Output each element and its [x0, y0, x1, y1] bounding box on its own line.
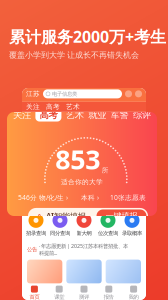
staticText: 同分查询 [50, 230, 70, 236]
staticText: 546分 物/化/生 › [18, 193, 68, 202]
staticText: 报告 [104, 294, 114, 300]
staticText: 适合你的大学 [61, 178, 103, 186]
button[interactable]: 就业 [88, 108, 106, 121]
staticText: 课堂 [54, 294, 64, 300]
staticText: 测评 [79, 294, 89, 300]
staticText: 关注 [26, 103, 40, 111]
button[interactable]: 录取概率 [120, 213, 144, 236]
staticText: AI智能填报 [46, 211, 86, 221]
button[interactable]: ∿ [28, 208, 148, 224]
button[interactable]: 军警 [111, 108, 129, 121]
staticText: 853 [55, 141, 100, 177]
button[interactable]: 新大纲 [72, 213, 96, 236]
button[interactable]: 高考 [35, 108, 61, 121]
staticText: 综评 [133, 109, 151, 120]
staticText: 本科 › [81, 193, 99, 202]
button[interactable]: 艺术 [66, 108, 84, 121]
button[interactable] [106, 260, 141, 284]
staticText: 一键填报 [105, 211, 137, 221]
button[interactable]: 课堂 [47, 286, 72, 300]
staticText: 位次查询 [98, 230, 118, 236]
staticText: 关注 [13, 109, 31, 120]
staticText: · 年志愿更新 | 2025江苏本科普招批、本科提前... [39, 242, 128, 257]
button[interactable]: 综评 [133, 108, 151, 121]
staticText: 高考 [46, 103, 60, 111]
button[interactable] [66, 260, 102, 284]
staticText: 艺术 [66, 109, 84, 120]
button[interactable]: 首页 [22, 286, 47, 300]
button[interactable]: 测评 [72, 286, 96, 300]
button[interactable]: 报告 [96, 286, 121, 300]
staticText: 公告 [27, 246, 37, 253]
staticText: 10张志愿表 [110, 193, 146, 202]
button[interactable]: 关注 [13, 108, 31, 121]
button[interactable]: 位次查询 [96, 213, 120, 236]
staticText: 军警 [111, 109, 129, 120]
staticText: 艺术 [66, 103, 80, 111]
staticText: 电子信息类 [52, 91, 77, 97]
button[interactable]: 我的 [121, 286, 146, 300]
staticText: 高考 [39, 109, 57, 120]
staticText: 所 [102, 166, 109, 174]
staticText: 首页 [29, 294, 39, 300]
staticText: 覆盖小学到大学 让成长不再错失机会 [9, 50, 139, 60]
staticText: 就业 [88, 109, 106, 120]
staticText: 我的 [129, 294, 139, 300]
staticText: 江苏 [26, 90, 40, 98]
staticText: 录取概率 [122, 230, 142, 236]
button[interactable]: 招录查询 [24, 213, 48, 236]
staticText: 累计服务2000万+考生 [9, 26, 166, 47]
button[interactable] [27, 260, 62, 284]
button[interactable]: 同分查询 [48, 213, 72, 236]
staticText: 招录查询 [26, 230, 46, 236]
staticText: 新大纲 [76, 230, 91, 236]
staticText: ∿ [37, 211, 44, 220]
